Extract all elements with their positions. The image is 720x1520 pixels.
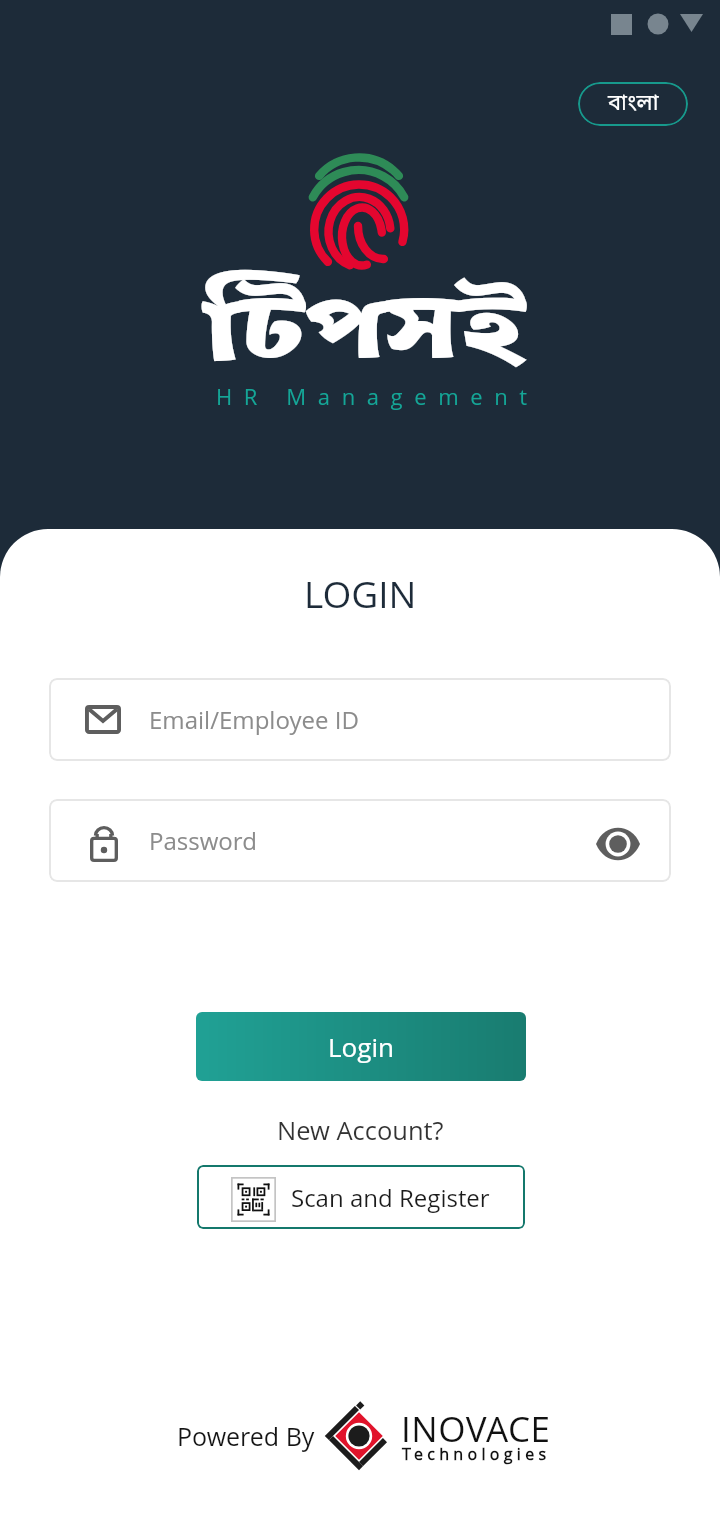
staticText: HR Management bbox=[216, 381, 539, 411]
staticText: Login bbox=[328, 1029, 394, 1064]
staticText: টিপসই bbox=[203, 261, 526, 398]
button[interactable]: Login bbox=[196, 1012, 526, 1081]
staticText: New Account? bbox=[277, 1113, 444, 1148]
button[interactable]: Email/Employee ID bbox=[49, 678, 671, 761]
staticText: Scan and Register bbox=[291, 1181, 490, 1214]
button[interactable]: Password bbox=[49, 799, 671, 882]
staticText: Email/Employee ID bbox=[149, 703, 359, 736]
staticText: LOGIN bbox=[304, 568, 417, 618]
staticText: বাংলা bbox=[608, 90, 659, 119]
staticText: Technologies bbox=[402, 1443, 551, 1465]
staticText: Password bbox=[149, 824, 593, 857]
button[interactable]: Show password bbox=[593, 815, 645, 867]
staticText: INOVACE bbox=[401, 1405, 551, 1453]
button[interactable]: বাংলা bbox=[578, 82, 688, 126]
staticText: Powered By bbox=[177, 1419, 315, 1453]
button[interactable]: Scan and Register bbox=[197, 1165, 525, 1229]
